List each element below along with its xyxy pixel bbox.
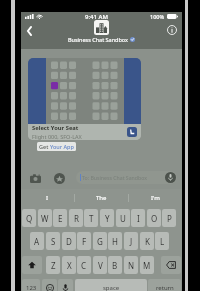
button[interactable]: Select Your Seat — [28, 58, 141, 140]
button[interactable]: G — [93, 232, 107, 250]
button[interactable]: Business Chat Sandbox — [68, 20, 135, 43]
staticText: 123 — [26, 284, 37, 291]
staticText: Y — [105, 213, 110, 224]
button[interactable]: F — [77, 232, 91, 250]
button[interactable]: T — [84, 209, 98, 227]
button[interactable]: Y — [100, 209, 114, 227]
button[interactable]: O — [147, 209, 161, 227]
staticText: D — [66, 236, 72, 247]
staticText: space — [103, 284, 120, 291]
button[interactable]: Get — [39, 143, 74, 150]
button[interactable]: X — [62, 256, 76, 274]
staticText: K — [145, 236, 150, 247]
button[interactable]: K — [140, 232, 154, 250]
button[interactable]: 123 — [22, 279, 40, 291]
button[interactable]: I — [131, 209, 145, 227]
button[interactable]: J — [124, 232, 138, 250]
staticText: G — [97, 236, 103, 247]
staticText: 100% — [150, 13, 165, 20]
staticText: T — [89, 213, 94, 224]
button[interactable]: Z — [46, 256, 60, 274]
staticText: I — [137, 213, 140, 224]
button[interactable]: Details — [164, 22, 179, 38]
staticText: F — [82, 236, 87, 247]
staticText: L — [160, 236, 165, 247]
button[interactable]: P — [162, 209, 176, 227]
staticText: Q — [26, 213, 33, 224]
button[interactable]: L — [155, 232, 169, 250]
button[interactable]: I — [21, 189, 74, 207]
button[interactable]: V — [93, 256, 107, 274]
staticText: E — [58, 213, 63, 224]
staticText: R — [74, 213, 79, 224]
staticText: Select Your Seat — [32, 124, 79, 132]
button[interactable]: D — [62, 232, 76, 250]
staticText: Flight 000, SFO-LAX — [32, 133, 82, 140]
button[interactable]: A — [30, 232, 44, 250]
staticText: V — [98, 260, 103, 271]
button[interactable]: Shift — [22, 256, 42, 274]
button[interactable]: To: Business Chat Sandbox — [76, 171, 177, 184]
staticText: The — [96, 194, 107, 202]
button[interactable]: Dictate — [58, 279, 73, 291]
button[interactable]: R — [69, 209, 83, 227]
staticText: N — [128, 260, 135, 271]
staticText: I — [46, 194, 49, 202]
staticText: M — [143, 260, 151, 271]
button[interactable]: M — [140, 256, 154, 274]
button[interactable]: Audio message — [165, 172, 176, 183]
staticText: I'm — [151, 194, 160, 202]
staticText: U — [120, 213, 126, 224]
button[interactable]: E — [53, 209, 67, 227]
button[interactable]: W — [38, 209, 52, 227]
staticText: X — [67, 260, 72, 271]
button[interactable]: space — [75, 279, 147, 291]
staticText: Get — [39, 143, 50, 150]
button[interactable]: N — [124, 256, 138, 274]
button[interactable]: Emoji — [42, 279, 57, 291]
staticText: B — [112, 260, 118, 271]
button[interactable]: B — [108, 256, 122, 274]
staticText: Business Chat Sandbox — [68, 36, 129, 43]
staticText: Z — [51, 260, 56, 271]
button[interactable]: I'm — [129, 189, 182, 207]
staticText: Your App — [50, 143, 74, 150]
staticText: W — [41, 213, 49, 224]
staticText: J — [130, 236, 133, 247]
staticText: C — [81, 260, 87, 271]
button[interactable]: return — [148, 279, 181, 291]
button[interactable]: The — [75, 189, 128, 207]
button[interactable]: App Store — [52, 171, 66, 185]
button[interactable]: Q — [22, 209, 36, 227]
button[interactable]: C — [77, 256, 91, 274]
staticText: A — [34, 236, 40, 247]
button[interactable]: Delete — [161, 256, 181, 274]
staticText: return — [156, 284, 174, 291]
button[interactable]: U — [116, 209, 130, 227]
staticText: 9:41 AM — [85, 13, 108, 21]
staticText: To: Business Chat Sandbox — [82, 174, 147, 181]
button[interactable]: S — [46, 232, 60, 250]
button[interactable]: H — [108, 232, 122, 250]
button[interactable]: Back — [22, 23, 36, 39]
staticText: S — [51, 236, 56, 247]
button[interactable]: Camera — [28, 171, 42, 185]
staticText: O — [151, 213, 158, 224]
staticText: P — [167, 213, 172, 224]
staticText: H — [112, 236, 118, 247]
